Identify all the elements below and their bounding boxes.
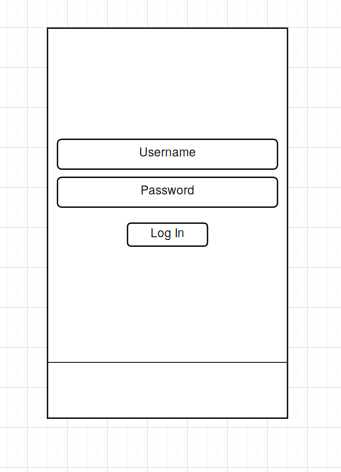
staticText: Log In	[150, 223, 184, 241]
button[interactable]: Log In	[127, 223, 207, 246]
staticText: Password	[140, 181, 194, 198]
button[interactable]: Username	[57, 139, 277, 169]
button[interactable]: Password	[57, 177, 277, 207]
staticText: Username	[139, 143, 196, 160]
